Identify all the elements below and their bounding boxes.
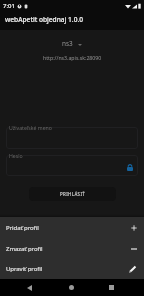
button[interactable]: Upraviť profil xyxy=(0,259,144,279)
staticText: webApetit objednaj 1.0.0 xyxy=(5,15,84,24)
button[interactable]: Heslo xyxy=(6,155,138,176)
other: Show password xyxy=(127,164,133,171)
staticText: Pridať profil xyxy=(6,224,39,232)
button[interactable]: Back xyxy=(21,279,38,296)
button[interactable]: Recent apps xyxy=(103,279,120,296)
staticText: Upraviť profil xyxy=(6,265,43,273)
button[interactable]: Zmazať profil xyxy=(0,238,144,259)
button[interactable]: Pridať profil xyxy=(0,217,144,238)
button[interactable]: ns3 xyxy=(59,38,85,49)
other: Edit profile xyxy=(129,265,137,273)
other: Add profile xyxy=(131,225,137,231)
staticText: ns3 xyxy=(62,39,73,48)
button[interactable]: PRIHLÁSIŤ xyxy=(29,187,116,201)
staticText: 7:01 xyxy=(3,2,15,10)
other: Delete profile xyxy=(131,246,137,252)
staticText: Zmazať profil xyxy=(6,245,43,253)
staticText: http://ns3.apis.sk:28090 xyxy=(43,54,102,61)
staticText: Uživateľské meno xyxy=(9,124,52,131)
staticText: PRIHLÁSIŤ xyxy=(60,191,86,197)
button[interactable]: Home xyxy=(63,279,80,296)
staticText: Heslo xyxy=(9,152,23,159)
button[interactable]: Uživateľské meno xyxy=(6,127,138,149)
